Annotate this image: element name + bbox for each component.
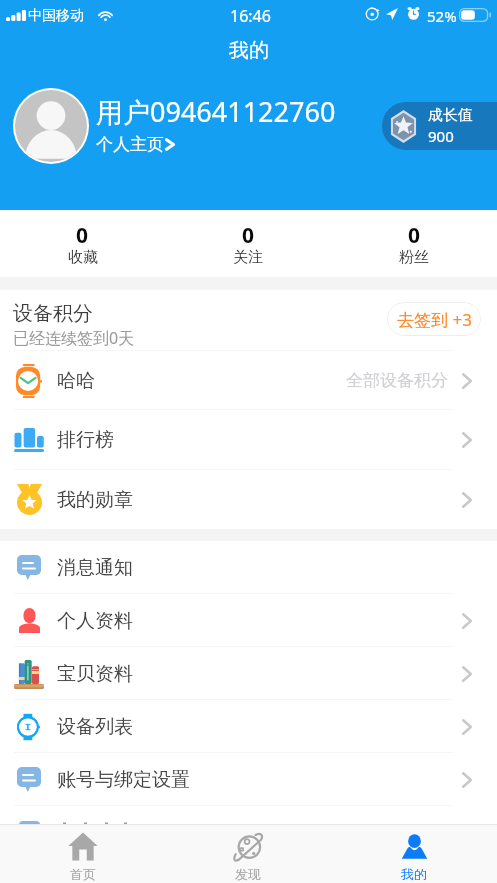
- button[interactable]: 宝贝资料: [0, 647, 497, 700]
- staticText: 收藏: [68, 248, 98, 267]
- staticText: 中国移动: [28, 7, 84, 25]
- button[interactable]: [0, 806, 497, 824]
- button[interactable]: 排行榜: [0, 410, 497, 470]
- staticText: 个人主页: [96, 134, 164, 155]
- button[interactable]: 哈哈: [0, 351, 497, 410]
- staticText: 已经连续签到0天: [13, 327, 135, 349]
- staticText: 关注: [233, 248, 263, 267]
- staticText: 0: [242, 221, 255, 250]
- button[interactable]: 账号与绑定设置: [0, 753, 497, 806]
- staticText: 哈哈: [57, 369, 95, 393]
- button[interactable]: 设备列表: [0, 700, 497, 753]
- button[interactable]: 我的: [331, 825, 497, 883]
- staticText: 0: [408, 221, 421, 250]
- staticText: 我的勋章: [57, 488, 133, 512]
- staticText: 我的: [401, 866, 427, 882]
- staticText: 排行榜: [57, 428, 114, 452]
- staticText: 消息通知: [57, 556, 133, 580]
- button[interactable]: 0: [165, 210, 331, 277]
- staticText: 发现: [235, 866, 261, 882]
- staticText: 设备积分: [13, 301, 93, 326]
- button[interactable]: 0: [0, 210, 165, 277]
- staticText: 账号与绑定设置: [57, 768, 190, 792]
- staticText: 设备列表: [57, 715, 133, 739]
- button[interactable]: 头像: [15, 90, 87, 162]
- staticText: 粉丝: [399, 248, 429, 267]
- staticText: 去签到 +3: [397, 308, 472, 331]
- button[interactable]: 我的勋章: [0, 470, 497, 529]
- button[interactable]: 去签到 +3: [387, 302, 481, 336]
- button[interactable]: 0: [331, 210, 497, 277]
- staticText: 用户094641122760: [96, 93, 336, 130]
- button[interactable]: 个人资料: [0, 594, 497, 647]
- staticText: 900: [428, 126, 454, 146]
- staticText: 成长值: [428, 106, 473, 125]
- button[interactable]: 发现: [165, 825, 331, 883]
- staticText: 16:46: [230, 5, 271, 27]
- staticText: 0: [76, 221, 89, 250]
- staticText: 宝贝资料: [57, 662, 133, 686]
- staticText: 全部设备积分: [346, 370, 448, 391]
- button[interactable]: 成长值: [382, 102, 497, 150]
- staticText: 52%: [427, 6, 457, 26]
- staticText: 首页: [70, 866, 96, 882]
- button[interactable]: 首页: [0, 825, 165, 883]
- staticText: 个人资料: [57, 609, 133, 633]
- staticText: 我的: [229, 38, 269, 63]
- button[interactable]: 消息通知: [0, 541, 497, 594]
- button[interactable]: 个人主页: [96, 134, 175, 155]
